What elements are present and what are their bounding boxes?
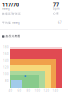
staticText: 80 [26, 89, 30, 92]
staticText: 100 [3, 72, 9, 76]
staticText: 血压分类图 [6, 34, 21, 38]
staticText: 140 [52, 89, 58, 92]
staticText: 收缩压/舒张压 [2, 12, 21, 15]
staticText: 160 [3, 52, 9, 56]
staticText: 120 [3, 66, 9, 69]
staticText: 120 [43, 89, 49, 92]
staticText: 180 [3, 45, 9, 49]
staticText: 77 [53, 1, 59, 8]
staticText: 67 [58, 21, 62, 24]
staticText: 心率 [53, 12, 59, 15]
staticText: 140 [3, 59, 9, 62]
staticText: 40 [8, 89, 12, 92]
staticText: 80 [5, 79, 9, 83]
staticText: 平均值 mmHg [2, 21, 20, 24]
staticText: bpm [53, 7, 59, 10]
staticText: 60 [17, 89, 21, 92]
staticText: mmHg [2, 7, 10, 10]
staticText: 100 [34, 89, 40, 92]
staticText: 117/70 [2, 1, 19, 8]
